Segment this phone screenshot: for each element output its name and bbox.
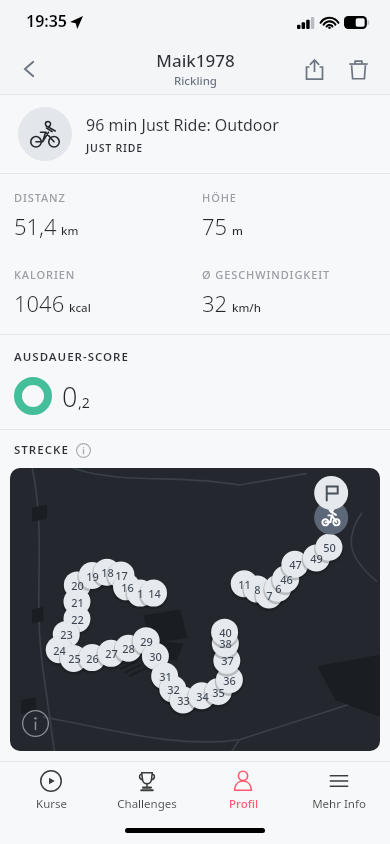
staticText: 33 — [177, 693, 190, 708]
staticText: Profil — [229, 796, 258, 812]
staticText: 8 — [254, 582, 261, 597]
staticText: 1 — [137, 586, 144, 601]
staticText: 14 — [148, 586, 161, 601]
staticText: 75 — [202, 211, 228, 241]
staticText: 35 — [212, 685, 225, 700]
button[interactable]: 96 min Just Ride: Outdoor — [0, 95, 390, 173]
button[interactable]: Map info — [22, 710, 49, 737]
staticText: KALORIEN — [14, 267, 76, 282]
staticText: 47 — [289, 557, 302, 572]
staticText: m — [232, 223, 243, 239]
staticText: 17 — [115, 568, 128, 583]
staticText: 0 — [62, 378, 78, 415]
staticText: 11 — [238, 577, 251, 592]
staticText: 7 — [266, 588, 273, 603]
staticText: Rickling — [174, 73, 217, 89]
staticText: 16 — [121, 580, 134, 595]
staticText: 32 — [167, 682, 180, 697]
staticText: JUST RIDE — [86, 141, 143, 155]
button[interactable]: Mehr Info — [294, 766, 384, 816]
staticText: AUSDAUER-SCORE — [14, 349, 129, 365]
staticText: Mehr Info — [312, 796, 366, 812]
staticText: 38 — [219, 636, 232, 651]
staticText: 36 — [223, 673, 236, 688]
staticText: 23 — [60, 627, 73, 642]
staticText: 46 — [280, 572, 293, 587]
staticText: 40 — [219, 625, 232, 640]
staticText: km/h — [232, 300, 261, 316]
staticText: 19:35 — [26, 10, 68, 32]
staticText: 22 — [71, 612, 84, 627]
staticText: 29 — [140, 634, 153, 649]
button[interactable]: Profil — [198, 766, 288, 816]
staticText: STRECKE — [14, 442, 69, 458]
staticText: 30 — [149, 649, 162, 664]
staticText: 96 min Just Ride: Outdoor — [86, 114, 279, 136]
staticText: Ø GESCHWINDIGKEIT — [202, 267, 331, 282]
staticText: 18 — [101, 565, 114, 580]
staticText: 32 — [202, 288, 228, 318]
button[interactable]: Delete — [336, 47, 380, 91]
staticText: 1046 — [14, 288, 65, 318]
staticText: 31 — [159, 669, 172, 684]
staticText: 24 — [53, 643, 66, 658]
staticText: Kurse — [36, 796, 67, 812]
button[interactable]: Share — [292, 47, 336, 91]
staticText: 25 — [68, 651, 81, 666]
staticText: 49 — [310, 551, 323, 566]
staticText: 28 — [122, 641, 135, 656]
staticText: Maik1978 — [156, 49, 235, 72]
button[interactable]: Challenges — [102, 766, 192, 816]
staticText: 19 — [86, 569, 99, 584]
staticText: kcal — [69, 300, 91, 316]
staticText: HÖHE — [202, 190, 237, 205]
staticText: 6 — [275, 581, 282, 596]
button[interactable]: Back — [8, 47, 52, 91]
button[interactable]: Kurse — [6, 766, 96, 816]
staticText: 21 — [71, 595, 84, 610]
staticText: 50 — [323, 540, 336, 555]
staticText: 20 — [71, 578, 84, 593]
staticText: 34 — [196, 689, 209, 704]
staticText: km — [61, 223, 79, 239]
staticText: 26 — [86, 651, 99, 666]
button[interactable]: Info — [76, 443, 91, 458]
staticText: 51,4 — [14, 211, 57, 241]
staticText: DISTANZ — [14, 190, 66, 205]
staticText: Challenges — [117, 796, 177, 812]
staticText: ,2 — [78, 393, 90, 412]
staticText: 27 — [105, 646, 118, 661]
button[interactable]: Route map — [10, 468, 380, 751]
staticText: 37 — [221, 653, 234, 668]
